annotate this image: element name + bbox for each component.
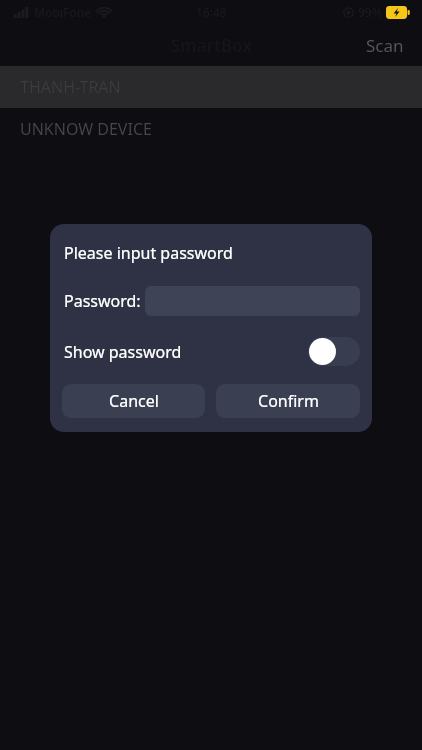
staticText: Cancel bbox=[109, 390, 159, 412]
staticText: Please input password bbox=[64, 242, 233, 264]
staticText: 16:48 bbox=[196, 4, 227, 20]
staticText: 99% bbox=[358, 4, 382, 20]
button[interactable]: Cancel bbox=[62, 384, 205, 418]
button[interactable]: Confirm bbox=[216, 384, 360, 418]
staticText: THANH-TRAN bbox=[20, 76, 121, 98]
staticText: Confirm bbox=[258, 390, 319, 412]
button[interactable]: UNKNOW DEVICE bbox=[0, 108, 422, 150]
staticText: MobiFone bbox=[34, 4, 92, 20]
staticText: Password: bbox=[64, 290, 141, 312]
staticText: UNKNOW DEVICE bbox=[20, 118, 152, 140]
button[interactable]: Show password toggle bbox=[308, 337, 360, 366]
staticText: Scan bbox=[366, 34, 404, 57]
button[interactable]: Scan bbox=[348, 26, 422, 65]
staticText: Show password bbox=[64, 341, 182, 363]
